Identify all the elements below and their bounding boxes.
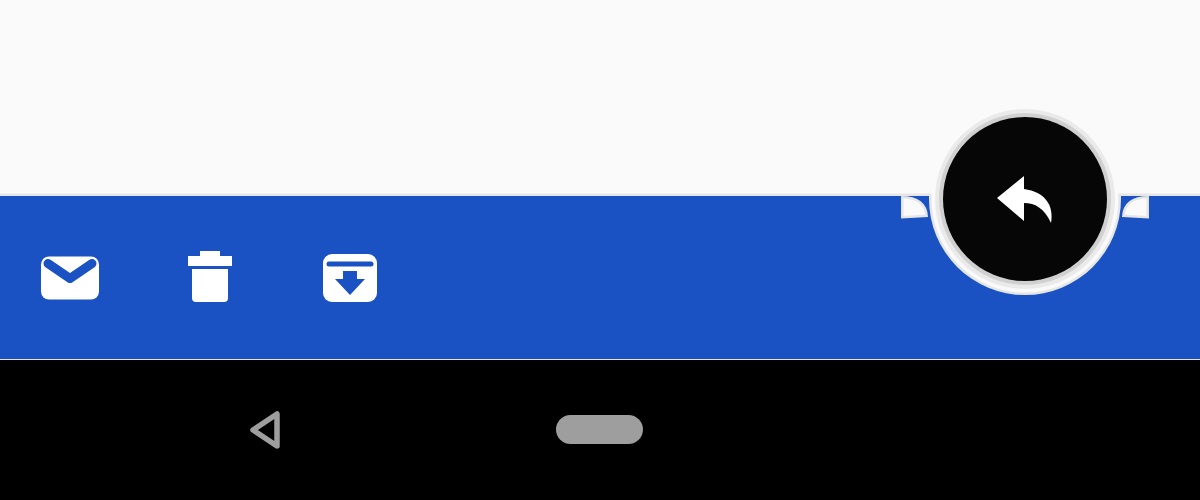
button[interactable]: Back: [221, 385, 311, 475]
button[interactable]: Delete: [174, 242, 246, 314]
button[interactable]: Archive: [314, 242, 386, 314]
button[interactable]: Home: [544, 397, 655, 462]
button[interactable]: Reply: [943, 117, 1107, 281]
button[interactable]: Mark as unread: [34, 242, 106, 314]
